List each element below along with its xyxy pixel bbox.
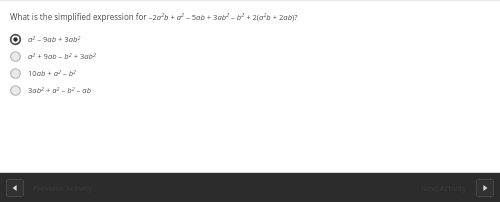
staticText: 10ab + a2 – b2 — [28, 68, 76, 79]
staticText: a2 + 9ab – b2 + 3ab2 — [28, 51, 96, 62]
staticText: What is the simplified expression for –2… — [10, 11, 298, 22]
button[interactable]: 3ab2 + a2 – b2 – ab — [0, 82, 500, 99]
button[interactable]: 10ab + a2 – b2 — [0, 65, 500, 82]
button[interactable]: a2 – 9ab + 3ab2 — [0, 31, 500, 48]
button[interactable]: Previous Activity — [6, 179, 24, 197]
staticText: 3ab2 + a2 – b2 – ab — [28, 85, 92, 96]
button[interactable]: Next Activity — [421, 183, 467, 193]
button[interactable]: a2 + 9ab – b2 + 3ab2 — [0, 48, 500, 65]
staticText: a2 – 9ab + 3ab2 — [28, 34, 81, 45]
button[interactable]: Previous Activity — [33, 183, 92, 193]
button[interactable]: Next Activity — [476, 179, 494, 197]
